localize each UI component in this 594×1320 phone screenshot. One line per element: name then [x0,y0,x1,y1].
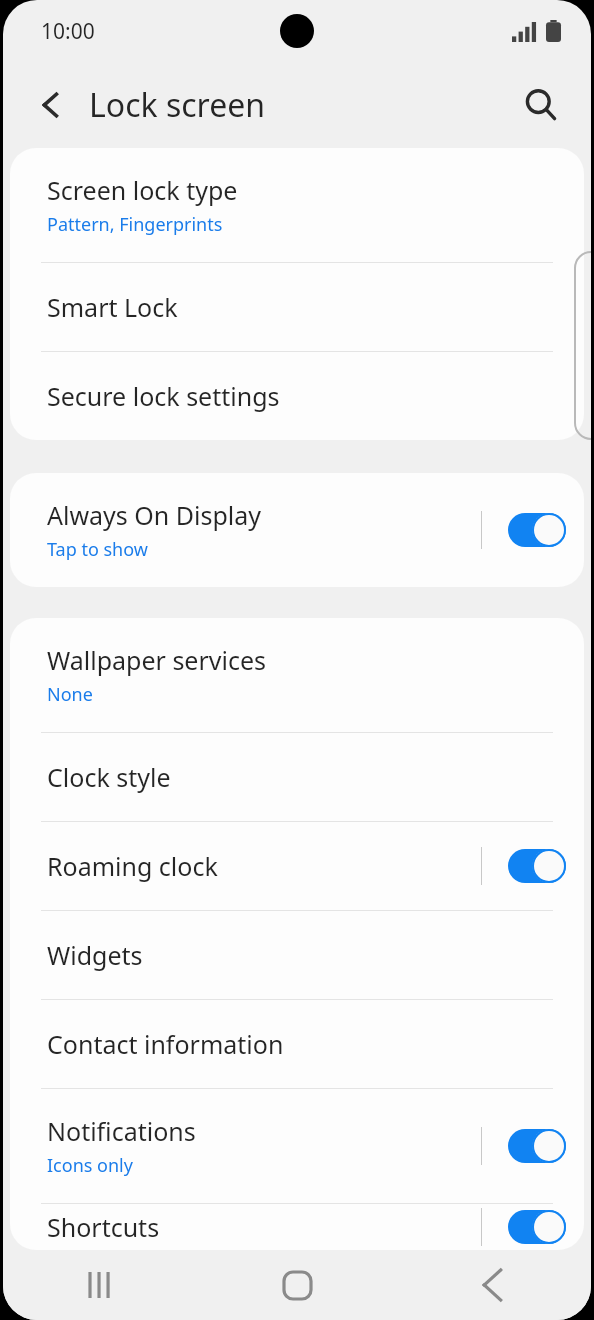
staticText: Pattern, Fingerprints [47,212,223,237]
staticText: Wallpaper services [47,643,267,677]
button[interactable]: Always On Display [10,473,584,587]
button[interactable]: Smart Lock [10,263,584,351]
staticText: Notifications [47,1114,196,1148]
staticText: Smart Lock [47,290,178,324]
staticText: None [47,682,93,707]
button[interactable]: Shortcuts [10,1204,584,1250]
button[interactable]: Toggle on [508,513,566,547]
button[interactable]: Screen lock type [10,148,584,262]
staticText: Lock screen [89,83,266,127]
staticText: Clock style [47,760,171,794]
button[interactable]: Recents [3,1250,199,1320]
button[interactable]: Clock style [10,733,584,821]
staticText: Screen lock type [47,173,238,207]
staticText: Shortcuts [47,1210,160,1244]
staticText: Contact information [47,1027,284,1061]
staticText: Always On Display [47,498,262,532]
staticText: Icons only [47,1153,133,1178]
button[interactable]: Back [25,79,77,131]
button[interactable]: Roaming clock [10,822,584,910]
staticText: Widgets [47,938,143,972]
button[interactable]: Home [199,1250,395,1320]
button[interactable]: Back [395,1250,591,1320]
button[interactable]: Wallpaper services [10,618,584,732]
button[interactable]: Search [513,77,569,133]
staticText: 10:00 [41,17,95,46]
button[interactable]: Contact information [10,1000,584,1088]
button[interactable]: Secure lock settings [10,352,584,440]
staticText: Roaming clock [47,849,218,883]
staticText: Tap to show [47,537,148,562]
button[interactable]: Toggle on [508,849,566,883]
button[interactable]: Toggle on [508,1129,566,1163]
staticText: Secure lock settings [47,379,280,413]
button[interactable]: Notifications [10,1089,584,1203]
button[interactable]: Widgets [10,911,584,999]
button[interactable]: Toggle on [508,1210,566,1244]
